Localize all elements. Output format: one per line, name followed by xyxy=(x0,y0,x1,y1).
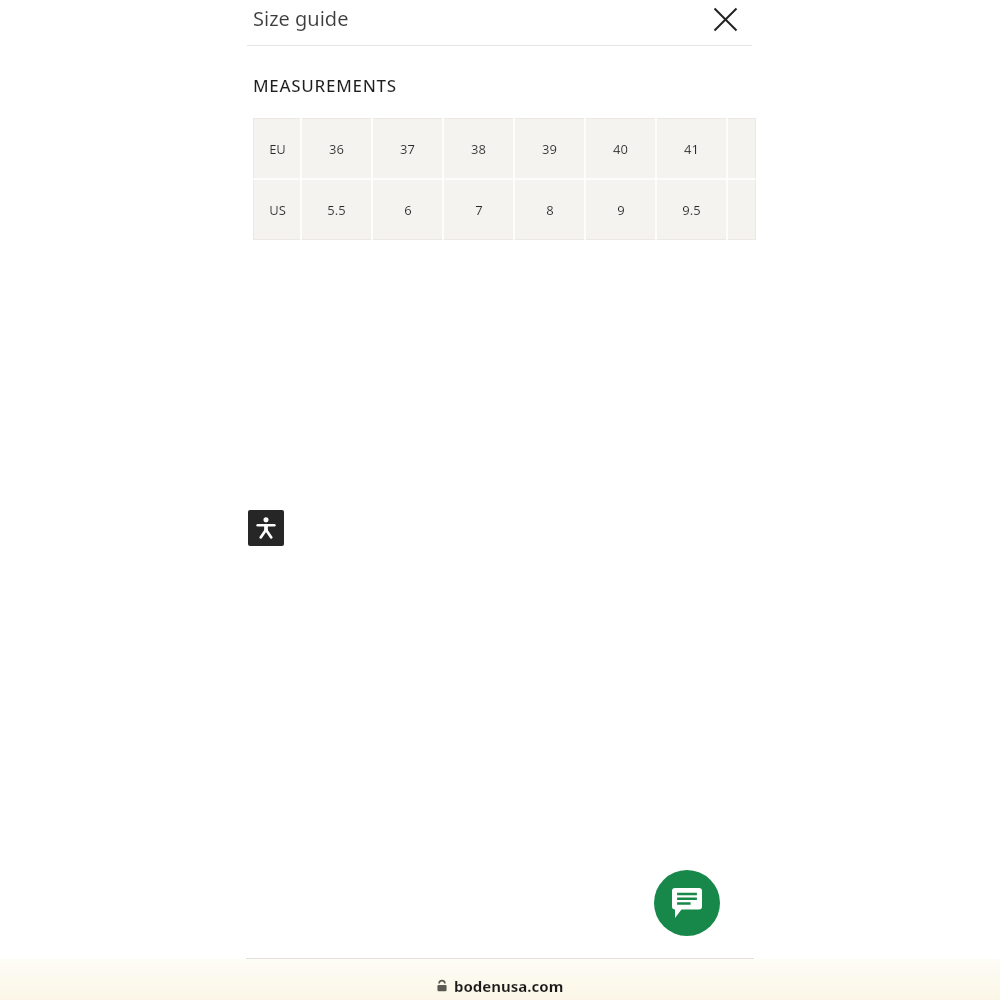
staticText: 8 xyxy=(546,201,554,219)
button[interactable]: Open chat xyxy=(654,870,720,936)
staticText: 41 xyxy=(684,140,699,158)
button[interactable]: Close xyxy=(707,1,743,37)
staticText: 39 xyxy=(542,140,557,158)
staticText: bodenusa.com xyxy=(454,976,564,996)
staticText: 5.5 xyxy=(327,201,346,219)
staticText: Size guide xyxy=(253,5,349,32)
staticText: 6 xyxy=(404,201,412,219)
staticText: 7 xyxy=(475,201,483,219)
staticText: 36 xyxy=(329,140,344,158)
staticText: 9 xyxy=(617,201,625,219)
staticText: US xyxy=(269,201,286,219)
staticText: 38 xyxy=(471,140,486,158)
staticText: MEASUREMENTS xyxy=(253,74,397,97)
staticText: 37 xyxy=(400,140,415,158)
staticText: 40 xyxy=(613,140,628,158)
button[interactable]: bodenusa.com xyxy=(436,976,564,996)
staticText: 9.5 xyxy=(682,201,701,219)
staticText: EU xyxy=(269,140,286,158)
button[interactable]: Accessibility options xyxy=(248,510,284,546)
